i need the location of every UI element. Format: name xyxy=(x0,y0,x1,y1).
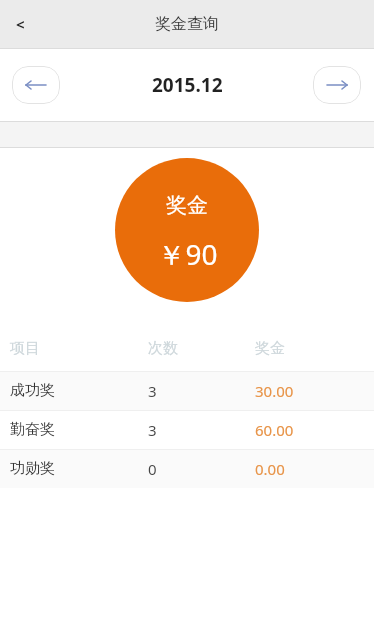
button[interactable]: 勤奋奖 xyxy=(0,411,374,449)
staticText: 奖金 xyxy=(166,192,208,218)
button[interactable]: Previous month xyxy=(12,66,60,104)
staticText: 3 xyxy=(148,420,255,440)
staticText: 30.00 xyxy=(255,381,294,401)
button[interactable]: 奖金 xyxy=(115,158,259,302)
staticText: 次数 xyxy=(148,339,255,358)
staticText: 3 xyxy=(148,381,255,401)
staticText: 成功奖 xyxy=(10,381,148,400)
button[interactable]: 成功奖 xyxy=(0,372,374,410)
staticText: ￥90 xyxy=(157,235,218,273)
staticText: 0.00 xyxy=(255,459,285,479)
staticText: 奖金查询 xyxy=(155,14,219,34)
button[interactable]: 功勋奖 xyxy=(0,450,374,488)
staticText: 60.00 xyxy=(255,420,294,440)
staticText: 勤奋奖 xyxy=(10,420,148,439)
staticText: 奖金 xyxy=(255,339,285,358)
staticText: 0 xyxy=(148,459,255,479)
staticText: 2015.12 xyxy=(152,72,223,98)
button[interactable]: Next month xyxy=(313,66,361,104)
staticText: 功勋奖 xyxy=(10,459,148,478)
button[interactable]: Back xyxy=(0,4,40,44)
staticText: < xyxy=(16,14,25,34)
staticText: 项目 xyxy=(10,339,148,358)
